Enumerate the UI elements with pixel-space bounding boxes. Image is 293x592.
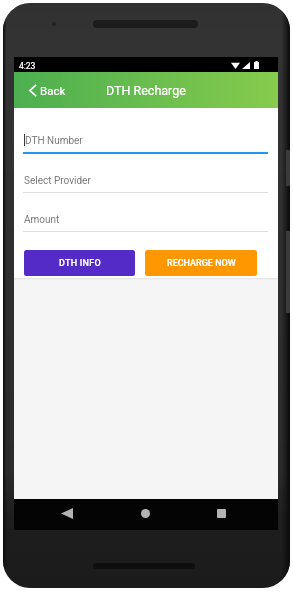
staticText: 4:23 — [19, 61, 36, 71]
staticText: DTH Number — [25, 135, 83, 147]
button[interactable]: DTH INFO — [24, 250, 135, 276]
button[interactable]: Recent apps — [206, 499, 236, 529]
staticText: Select Provider — [24, 175, 91, 187]
staticText: Amount — [24, 214, 60, 226]
staticText: RECHARGE NOW — [167, 258, 236, 269]
button[interactable]: RECHARGE NOW — [145, 250, 257, 276]
button[interactable]: Back — [14, 78, 76, 103]
staticText: DTH INFO — [59, 258, 101, 269]
staticText: DTH Recharge — [106, 83, 186, 98]
staticText: Back — [40, 84, 66, 97]
button[interactable]: Back — [52, 499, 82, 529]
button[interactable]: Home — [130, 499, 160, 529]
